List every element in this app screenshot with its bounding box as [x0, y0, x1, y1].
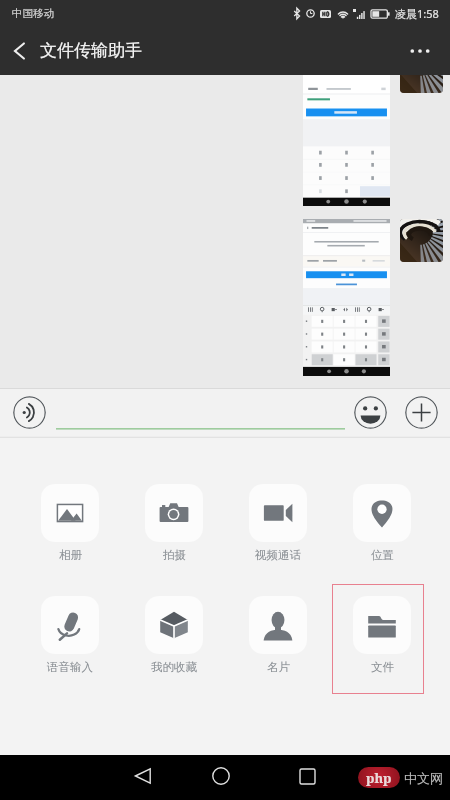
button[interactable]: Home	[201, 756, 241, 796]
staticText: 位置	[371, 548, 394, 562]
staticText: 相册	[59, 548, 82, 562]
staticText: 视频通话	[255, 548, 301, 562]
button[interactable]: 视频通话	[242, 484, 314, 562]
button[interactable]: 语音输入	[34, 596, 106, 674]
staticText: 中文网	[404, 770, 443, 786]
button[interactable]: 拍摄	[138, 484, 210, 562]
button[interactable]: More options	[398, 29, 442, 73]
button[interactable]: More functions	[405, 396, 438, 429]
staticText: 文件传输助手	[40, 40, 142, 61]
staticText: 我的收藏	[151, 660, 197, 674]
button[interactable]: 我的收藏	[138, 596, 210, 674]
button[interactable]: 名片	[242, 596, 314, 674]
button[interactable]: 相册	[34, 484, 106, 562]
staticText: 文件	[371, 660, 394, 674]
staticText: php	[366, 769, 392, 787]
button[interactable]: Back	[0, 31, 40, 71]
staticText: 凌晨1:58	[395, 6, 439, 21]
button[interactable]: Recents	[287, 756, 327, 796]
staticText: 拍摄	[163, 548, 186, 562]
button[interactable]: Voice input	[13, 396, 46, 429]
button[interactable]	[303, 75, 390, 206]
button[interactable]: Emoji	[354, 396, 387, 429]
button[interactable]: Avatar	[400, 75, 443, 93]
staticText: 语音输入	[47, 660, 93, 674]
staticText: 中国移动	[12, 7, 54, 20]
button[interactable]	[303, 219, 390, 376]
staticText: 名片	[267, 660, 290, 674]
button[interactable]: Back	[123, 756, 163, 796]
button[interactable]: Avatar	[400, 219, 443, 262]
button[interactable]: 位置	[346, 484, 418, 562]
button[interactable]: 文件	[346, 596, 418, 674]
